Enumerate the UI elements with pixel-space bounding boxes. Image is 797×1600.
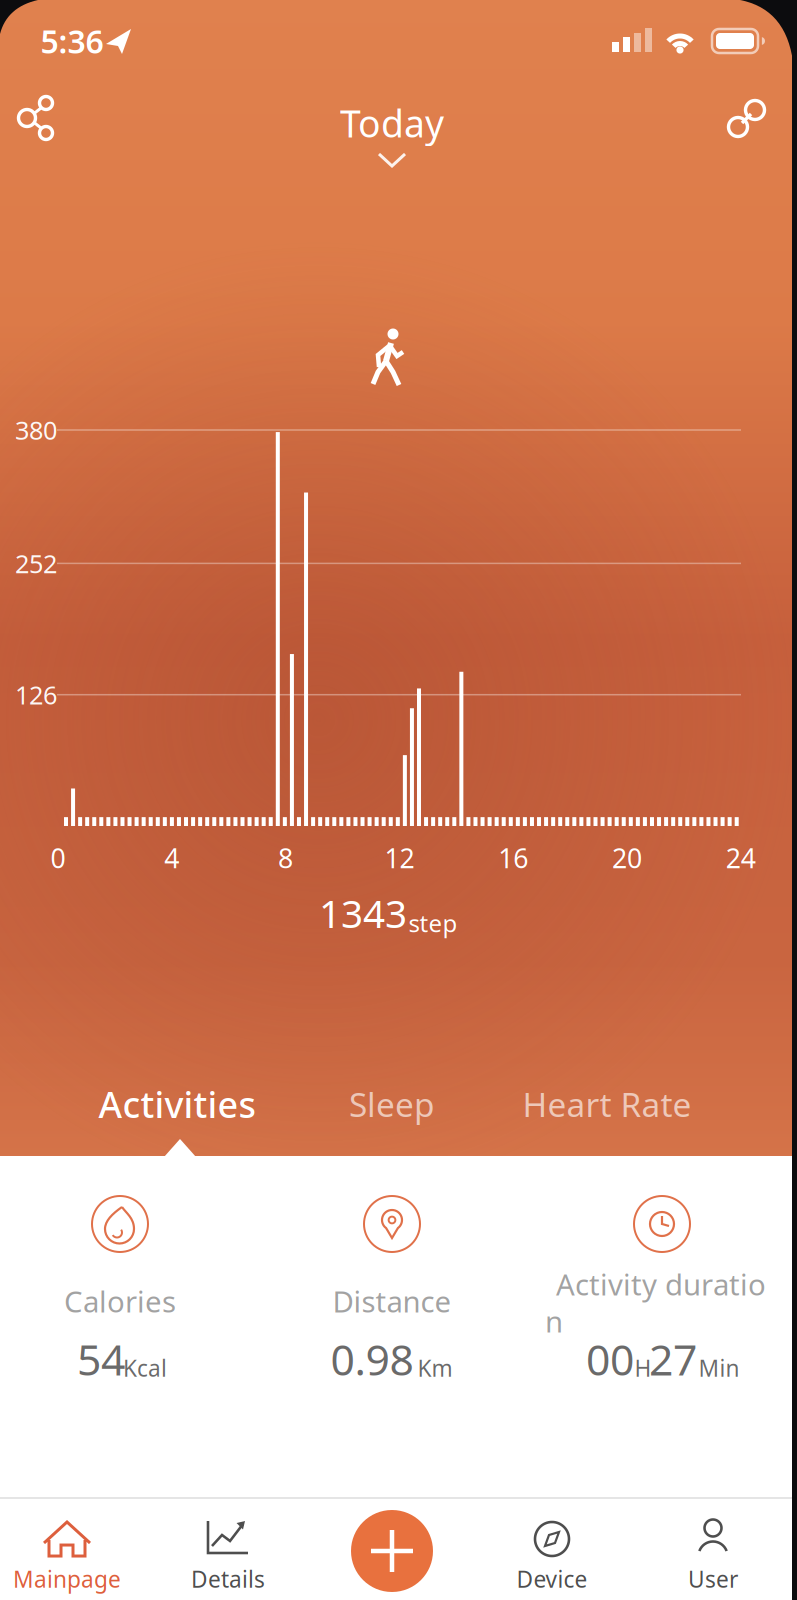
staticText: Today [340, 98, 444, 148]
staticText: Distance [332, 1281, 451, 1320]
staticText: Mainpage [13, 1564, 121, 1594]
staticText: Heart Rate [522, 1082, 691, 1126]
staticText: Activities [98, 1080, 255, 1128]
button[interactable]: Today [307, 97, 477, 177]
button[interactable]: User [638, 1498, 788, 1600]
staticText: Activity duratio [556, 1264, 766, 1303]
staticText: Km [417, 1353, 452, 1383]
staticText: 380 [15, 413, 57, 447]
staticText: 4 [164, 840, 179, 876]
button[interactable] [5, 83, 75, 153]
staticText: 00 [586, 1331, 634, 1387]
staticText: Device [516, 1564, 587, 1594]
staticText: 24 [726, 840, 756, 876]
staticText: Details [191, 1564, 265, 1594]
staticText: 1343 [319, 887, 407, 939]
staticText: 12 [384, 840, 414, 876]
staticText: 126 [15, 678, 57, 711]
staticText: 5:36 [40, 20, 103, 62]
staticText: 16 [498, 840, 528, 876]
staticText: n [545, 1301, 563, 1340]
staticText: Sleep [349, 1082, 435, 1126]
button[interactable]: Device [477, 1498, 627, 1600]
staticText: 252 [15, 547, 57, 580]
staticText: 20 [612, 840, 642, 876]
button[interactable]: Activities [67, 1064, 287, 1144]
button[interactable]: Details [153, 1498, 303, 1600]
staticText: step [408, 907, 457, 939]
button[interactable] [337, 1497, 447, 1600]
staticText: Calories [64, 1281, 176, 1320]
button[interactable]: Sleep [317, 1064, 467, 1144]
staticText: 54 [77, 1331, 125, 1387]
staticText: Min [698, 1353, 739, 1383]
staticText: 8 [278, 840, 293, 876]
staticText: Kcal [123, 1353, 167, 1383]
button[interactable]: Mainpage [0, 1498, 142, 1600]
staticText: 0 [50, 840, 65, 876]
staticText: 0.98 [330, 1331, 413, 1387]
button[interactable] [711, 83, 781, 153]
button[interactable]: Heart Rate [487, 1064, 727, 1144]
staticText: H [634, 1353, 651, 1383]
staticText: 27 [649, 1331, 697, 1387]
staticText: User [688, 1564, 738, 1594]
